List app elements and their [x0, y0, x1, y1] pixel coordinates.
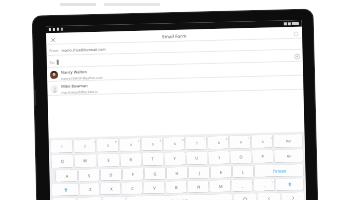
staticText: nancy.shelton@yahoo.com: [61, 75, 103, 80]
button[interactable]: J: [188, 166, 210, 179]
button[interactable]: L: [232, 165, 254, 178]
staticText: 2: [84, 144, 86, 148]
button[interactable]: Q: [51, 154, 73, 168]
staticText: ,: [242, 183, 244, 188]
button[interactable]: Del: [274, 134, 303, 148]
staticText: F: [131, 172, 135, 177]
button[interactable]: Y: [164, 152, 185, 165]
button[interactable]: O: [230, 150, 251, 164]
button[interactable]: 0: [252, 135, 273, 148]
button[interactable]: 1: [51, 139, 73, 153]
button[interactable]: Z: [80, 183, 100, 195]
button[interactable]: 서두: [77, 197, 101, 200]
staticText: @: [115, 139, 118, 142]
staticText: .: [264, 183, 266, 188]
button[interactable]: C: [122, 182, 143, 194]
button[interactable]: P: [252, 150, 273, 163]
staticText: 9: [240, 140, 242, 144]
button[interactable]: Send: [292, 30, 299, 37]
staticText: mario_frise@hotmail.com: [61, 47, 106, 53]
staticText: D: [109, 172, 113, 178]
button[interactable]: V: [144, 181, 165, 194]
staticText: Nancy Walton: [61, 69, 87, 75]
button[interactable]: Nancy Walton: [47, 62, 303, 81]
button[interactable]: mic: [233, 193, 256, 200]
button[interactable]: Готово: [254, 164, 304, 177]
button[interactable]: 2: [74, 139, 96, 152]
button[interactable]: X: [101, 182, 121, 195]
staticText: English (US): [171, 199, 188, 200]
button[interactable]: back: [274, 149, 303, 163]
staticText: Del: [286, 139, 291, 143]
staticText: To:: [50, 60, 55, 65]
button[interactable]: S: [78, 169, 100, 181]
button[interactable]: English (US): [126, 194, 232, 200]
button[interactable]: globe: [102, 196, 125, 200]
staticText: !: [94, 140, 95, 143]
staticText: &: [226, 137, 228, 140]
button[interactable]: 4: [120, 138, 141, 151]
staticText: Y: [173, 156, 176, 161]
button[interactable]: shift: [276, 178, 304, 191]
button[interactable]: H: [166, 167, 188, 179]
button[interactable]: Ctrl: [52, 197, 76, 200]
staticText: Z: [89, 187, 92, 192]
button[interactable]: Add contact: [294, 53, 300, 59]
button[interactable]: 7: [186, 136, 207, 150]
button[interactable]: Mike Bowman: [47, 76, 303, 95]
button[interactable]: B: [166, 181, 187, 193]
button[interactable]: I: [208, 151, 229, 164]
button[interactable]: K: [210, 166, 232, 178]
staticText: 4: [130, 143, 132, 147]
staticText: 3: [107, 144, 109, 148]
button[interactable]: 5: [142, 137, 163, 151]
staticText: 7: [196, 141, 198, 145]
button[interactable]: D: [100, 168, 122, 181]
button[interactable]: right: [281, 192, 304, 200]
button[interactable]: 6: [164, 137, 185, 150]
button[interactable]: U: [186, 151, 207, 165]
staticText: 0: [262, 140, 264, 144]
staticText: #: [138, 139, 140, 142]
staticText: G: [153, 171, 156, 177]
staticText: !: [251, 180, 252, 183]
button[interactable]: left: [257, 192, 280, 200]
button[interactable]: M: [210, 180, 231, 192]
button[interactable]: T: [142, 152, 163, 166]
button[interactable]: shift: [52, 183, 79, 196]
staticText: K: [219, 170, 222, 175]
staticText: *: [248, 136, 250, 139]
staticText: W: [83, 158, 87, 163]
staticText: Готово: [272, 168, 286, 174]
staticText: 8: [218, 141, 220, 145]
staticText: E: [107, 158, 110, 163]
staticText: 6: [174, 142, 176, 146]
staticText: ?: [272, 180, 274, 183]
button[interactable]: E: [97, 153, 119, 167]
staticText: X: [110, 186, 113, 192]
staticText: mario.wood@fachsez.it: [61, 89, 98, 94]
staticText: M: [219, 184, 223, 189]
staticText: H: [175, 171, 178, 176]
button[interactable]: W: [74, 154, 96, 167]
staticText: Mike Bowman: [61, 83, 88, 89]
button[interactable]: 9: [230, 135, 251, 149]
staticText: V: [153, 185, 156, 191]
staticText: $: [160, 138, 162, 141]
staticText: 1: [61, 145, 63, 149]
button[interactable]: .: [254, 179, 275, 191]
staticText: U: [195, 155, 198, 160]
button[interactable]: ,: [232, 179, 253, 192]
button[interactable]: F: [122, 168, 144, 180]
button[interactable]: N: [188, 180, 209, 193]
button[interactable]: G: [144, 167, 166, 180]
staticText: Q: [60, 159, 64, 164]
button[interactable]: 8: [208, 136, 229, 149]
button[interactable]: A: [55, 169, 78, 182]
staticText: B: [175, 185, 178, 190]
staticText: N: [197, 184, 201, 189]
staticText: J: [198, 170, 200, 175]
button[interactable]: 3: [97, 138, 119, 152]
button[interactable]: Close: [49, 36, 56, 43]
button[interactable]: R: [120, 153, 141, 166]
